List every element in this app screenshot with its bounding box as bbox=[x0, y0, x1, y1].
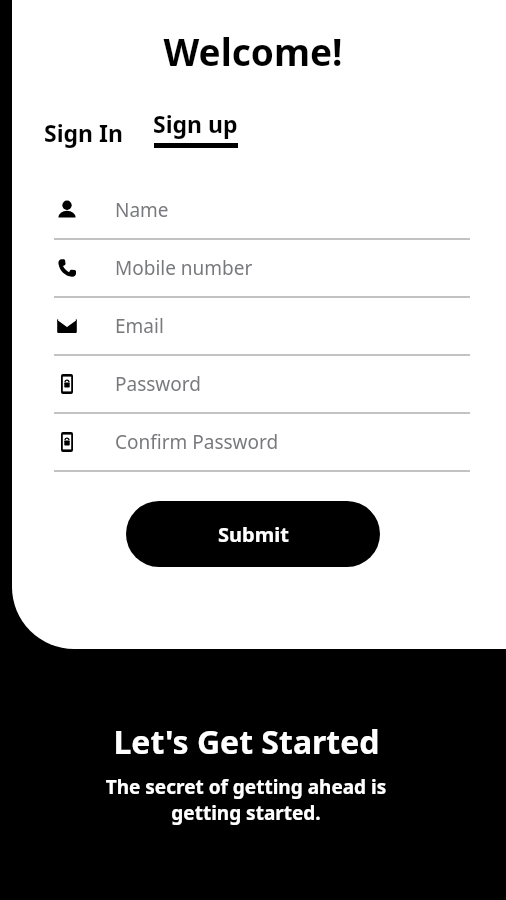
button[interactable]: Name bbox=[54, 182, 470, 240]
button[interactable]: Email bbox=[54, 298, 470, 356]
other: Email bbox=[55, 314, 79, 338]
staticText: Email bbox=[115, 313, 164, 339]
other: Name bbox=[55, 198, 79, 222]
staticText: Confirm Password bbox=[115, 429, 279, 455]
other: Password bbox=[55, 372, 79, 396]
button[interactable]: Submit bbox=[126, 501, 380, 567]
button[interactable]: Mobile number bbox=[54, 240, 470, 298]
button[interactable]: Password bbox=[54, 414, 470, 472]
button[interactable]: Sign up bbox=[151, 104, 240, 152]
staticText: The secret of getting ahead is getting s… bbox=[81, 774, 411, 826]
button[interactable]: Password bbox=[54, 356, 470, 414]
staticText: Name bbox=[115, 197, 169, 223]
button[interactable]: Sign In bbox=[42, 113, 125, 152]
other: Mobile number bbox=[55, 256, 79, 280]
staticText: Let's Get Started bbox=[113, 720, 380, 764]
staticText: Mobile number bbox=[115, 255, 253, 281]
staticText: Submit bbox=[218, 521, 289, 548]
staticText: Sign In bbox=[44, 117, 123, 148]
staticText: Sign up bbox=[153, 108, 238, 139]
staticText: Welcome! bbox=[12, 26, 494, 76]
staticText: Password bbox=[115, 371, 201, 397]
other: Password bbox=[55, 430, 79, 454]
